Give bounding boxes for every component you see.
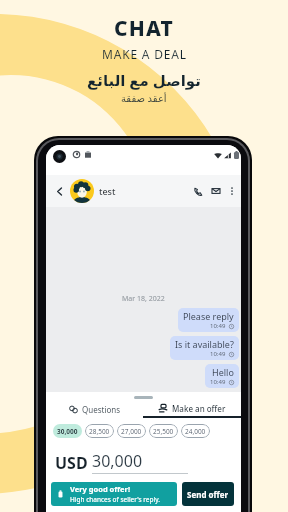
staticText: Mar 18, 2022 <box>122 294 165 304</box>
staticText: 25,500 <box>153 427 174 436</box>
button[interactable]: 25,500 <box>149 424 178 438</box>
staticText: 30,000 <box>92 450 143 472</box>
staticText: 27,000 <box>121 427 142 436</box>
staticText: 24,000 <box>185 427 206 436</box>
button[interactable]: Questions <box>46 400 143 418</box>
staticText: 30,000 <box>57 427 78 436</box>
staticText: Make an offer <box>172 403 226 414</box>
staticText: 10:49 <box>210 378 226 386</box>
staticText: High chances of seller's reply. <box>70 495 160 504</box>
button[interactable]: Make an offer <box>143 400 241 416</box>
staticText: MAKE A DEAL <box>102 46 187 62</box>
button[interactable]: More options <box>225 184 239 198</box>
staticText: test <box>99 185 116 197</box>
staticText: أعقد صفقة <box>121 91 167 105</box>
button[interactable]: Send offer <box>182 482 234 506</box>
staticText: CHAT <box>114 14 175 43</box>
staticText: 28,500 <box>89 427 110 436</box>
staticText: Questions <box>82 404 121 415</box>
staticText: USD <box>55 452 88 474</box>
staticText: Please reply <box>183 310 234 322</box>
button[interactable]: Back <box>51 183 67 199</box>
button[interactable]: 27,000 <box>117 424 146 438</box>
button[interactable]: 28,500 <box>85 424 114 438</box>
button[interactable]: 30,000 <box>53 424 82 438</box>
button[interactable]: Call <box>191 184 205 198</box>
button[interactable]: Email <box>209 184 223 198</box>
staticText: 10:49 <box>210 350 226 358</box>
staticText: تواصل مع البائع <box>87 70 201 90</box>
staticText: Send offer <box>187 489 229 500</box>
staticText: 10:49 <box>210 322 226 330</box>
staticText: Is it available? <box>175 338 234 350</box>
button[interactable]: 24,000 <box>181 424 210 438</box>
staticText: Hello <box>212 366 234 378</box>
staticText: Very good offer! <box>70 484 131 494</box>
button[interactable]: Very good offer! <box>51 482 177 506</box>
